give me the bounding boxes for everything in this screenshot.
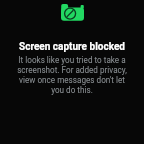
other: Screen capture blocked bbox=[61, 4, 84, 21]
button[interactable]: Screen capture blocked bbox=[0, 0, 144, 144]
staticText: It looks like you tried to take a screen… bbox=[13, 55, 131, 95]
staticText: Screen capture blocked bbox=[19, 41, 125, 53]
